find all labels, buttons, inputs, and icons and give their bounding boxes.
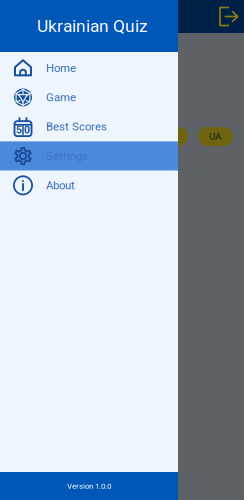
button[interactable]: UA: [198, 127, 233, 146]
staticText: Settings: [46, 149, 88, 163]
staticText: Version 1.0.0: [67, 481, 111, 491]
staticText: Best Scores: [46, 120, 107, 133]
staticText: Game: [46, 91, 76, 104]
staticText: 0: [24, 124, 30, 136]
button[interactable]: EN: [153, 127, 188, 146]
button[interactable]: Game: [0, 83, 178, 112]
button[interactable]: Home: [0, 53, 178, 83]
staticText: 5: [16, 124, 22, 136]
button[interactable]: Settings: [0, 141, 178, 171]
button[interactable]: 5: [0, 112, 178, 141]
button[interactable]: Log out: [214, 1, 244, 31]
staticText: EN: [164, 131, 177, 142]
button[interactable]: About: [0, 171, 178, 200]
staticText: Ukrainian Quiz: [37, 16, 148, 36]
staticText: About: [46, 179, 75, 192]
staticText: UA: [209, 131, 222, 142]
staticText: Home: [46, 61, 76, 75]
